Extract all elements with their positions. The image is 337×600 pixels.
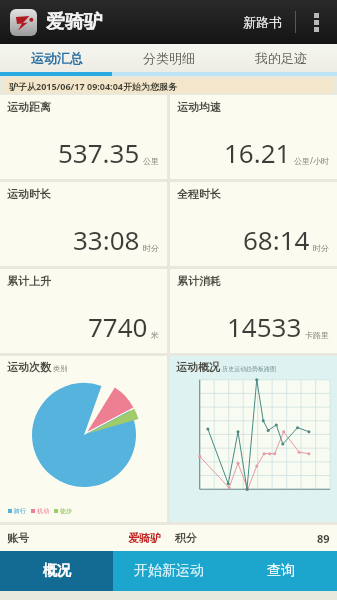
button[interactable]: More options [303, 9, 329, 35]
button[interactable]: 运动次数 [0, 356, 167, 522]
button[interactable]: 我的足迹 [225, 44, 337, 72]
staticText: 时分 [313, 243, 329, 253]
staticText: 概况 [43, 562, 71, 580]
staticText: 积分 [175, 531, 197, 545]
button[interactable]: 分类明细 [113, 44, 225, 72]
staticText: 新路书 [243, 14, 282, 30]
staticText: 累计上升 [7, 274, 51, 288]
staticText: 14533 [227, 309, 302, 344]
staticText: 徒步 [60, 507, 72, 515]
staticText: 米 [151, 330, 159, 340]
staticText: 查询 [267, 562, 295, 580]
staticText: 骑行 [14, 507, 26, 515]
staticText: 运动汇总 [31, 50, 83, 66]
staticText: 累计消耗 [177, 274, 221, 288]
button[interactable]: 运动概况 [170, 356, 337, 522]
button[interactable]: 全程时长 [170, 182, 337, 266]
staticText: 运动时长 [7, 187, 51, 201]
staticText: 运动均速 [177, 100, 221, 114]
button[interactable]: App logo [10, 9, 37, 36]
staticText: 爱骑驴 [128, 531, 161, 545]
staticText: 开始新运动 [134, 562, 204, 580]
staticText: 运动次数 [7, 360, 51, 374]
button[interactable]: 运动距离 [0, 95, 167, 179]
staticText: 我的足迹 [255, 50, 307, 66]
button[interactable]: 运动均速 [170, 95, 337, 179]
button[interactable]: 累计消耗 [170, 269, 337, 353]
staticText: 历史运动趋势板路图 [222, 365, 276, 373]
staticText: 时分 [143, 243, 159, 253]
staticText: 账号 [7, 531, 29, 545]
staticText: 68:14 [243, 222, 310, 257]
staticText: 分类明细 [143, 50, 195, 66]
button[interactable]: 运动汇总 [0, 44, 113, 72]
button[interactable]: 新路书 [237, 8, 288, 36]
button[interactable]: 开始新运动 [113, 551, 225, 591]
staticText: 卡路里 [305, 330, 329, 340]
staticText: 16.21 [224, 135, 291, 170]
staticText: 公里/小时 [294, 155, 329, 166]
button[interactable]: 累计上升 [0, 269, 167, 353]
button[interactable]: 积分 [168, 525, 337, 551]
staticText: 运动距离 [7, 100, 51, 114]
staticText: 33:08 [73, 222, 140, 257]
staticText: 类别 [53, 364, 67, 373]
staticText: 公里 [143, 156, 159, 166]
staticText: 537.35 [58, 135, 140, 170]
staticText: 爱骑驴 [46, 10, 103, 34]
staticText: 运动概况 [176, 360, 220, 374]
staticText: 驴子从2015/06/17 09:04:04开始为您服务 [9, 80, 177, 92]
button[interactable]: 账号 [0, 525, 168, 551]
staticText: 89 [317, 531, 330, 546]
button[interactable]: 查询 [225, 551, 337, 591]
staticText: 全程时长 [177, 187, 221, 201]
button[interactable]: 概况 [0, 551, 113, 591]
button[interactable]: 运动时长 [0, 182, 167, 266]
staticText: 机动 [37, 507, 49, 515]
staticText: 7740 [88, 309, 148, 344]
